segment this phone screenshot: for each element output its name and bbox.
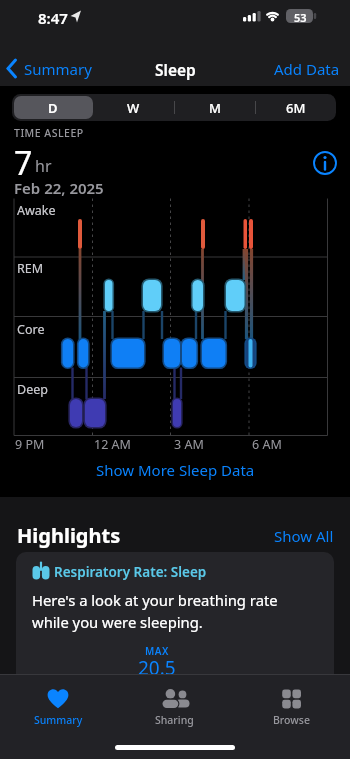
staticText: 7 xyxy=(14,141,33,185)
button[interactable]: Sharing xyxy=(116,674,233,738)
staticText: Respiratory Rate: Sleep xyxy=(54,563,207,581)
staticText: Summary xyxy=(34,713,83,727)
staticText: 20.5 xyxy=(138,655,176,681)
button[interactable]: M xyxy=(174,94,255,121)
staticText: REM xyxy=(17,260,44,277)
button[interactable]: W xyxy=(93,94,174,121)
staticText: Awake xyxy=(17,202,56,219)
staticText: 53 xyxy=(294,10,307,25)
staticText: Summary xyxy=(24,59,92,79)
staticText: 3 AM xyxy=(174,436,204,453)
button[interactable] xyxy=(311,149,339,177)
staticText: 12 AM xyxy=(94,436,131,453)
button[interactable]: Show More Sleep Data xyxy=(90,458,260,482)
staticText: TIME ASLEEP xyxy=(14,126,84,140)
staticText: Sleep xyxy=(155,59,196,80)
button[interactable]: Summary xyxy=(0,52,110,84)
button[interactable]: D xyxy=(12,94,93,121)
staticText: Here's a look at your breathing rate whi… xyxy=(32,590,278,633)
staticText: Show All xyxy=(274,526,334,546)
staticText: Core xyxy=(17,321,45,338)
staticText: M xyxy=(209,99,221,117)
button[interactable] xyxy=(16,552,334,759)
button[interactable]: 6M xyxy=(255,94,336,121)
button[interactable]: Show All xyxy=(270,524,336,546)
staticText: 9 PM xyxy=(15,436,45,453)
staticText: W xyxy=(127,99,140,117)
staticText: D xyxy=(48,99,58,117)
staticText: Browse xyxy=(273,713,310,727)
staticText: 8:47 xyxy=(38,8,68,28)
staticText: 6M xyxy=(286,99,306,117)
button[interactable]: Add Data xyxy=(266,52,346,84)
staticText: Show More Sleep Data xyxy=(96,460,255,480)
button[interactable]: Summary xyxy=(0,674,116,738)
staticText: Feb 22, 2025 xyxy=(14,178,104,198)
button[interactable]: Browse xyxy=(233,674,350,738)
staticText: Sharing xyxy=(155,713,194,727)
staticText: hr xyxy=(35,155,52,177)
staticText: Highlights xyxy=(17,522,121,549)
staticText: Deep xyxy=(17,381,48,398)
staticText: MAX xyxy=(145,644,169,658)
staticText: Add Data xyxy=(274,59,340,79)
staticText: 6 AM xyxy=(252,436,282,453)
